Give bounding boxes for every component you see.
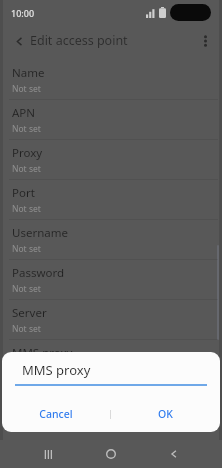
staticText: Cancel: [39, 407, 73, 421]
button[interactable]: APN: [0, 100, 222, 139]
staticText: Username: [12, 225, 68, 241]
staticText: Not set: [12, 83, 41, 95]
staticText: Not set: [12, 403, 41, 415]
staticText: Not set: [12, 363, 41, 375]
staticText: Not set: [12, 243, 41, 255]
button[interactable]: Back: [8, 30, 30, 52]
button[interactable]: Proxy: [0, 140, 222, 179]
staticText: Name: [12, 65, 45, 81]
staticText: Port: [12, 185, 35, 201]
button[interactable]: Name: [0, 60, 222, 99]
staticText: Password: [12, 265, 65, 281]
staticText: OK: [158, 407, 173, 421]
button[interactable]: MMS proxy: [0, 340, 222, 379]
staticText: Edit access point: [30, 32, 128, 49]
staticText: MMS proxy: [22, 361, 91, 379]
button[interactable]: Home: [97, 440, 125, 468]
button[interactable]: More options: [194, 30, 216, 52]
button[interactable]: Username: [0, 220, 222, 259]
button[interactable]: Port: [0, 180, 222, 219]
staticText: MMS proxy: [12, 345, 73, 361]
button[interactable]: OK: [111, 401, 220, 427]
staticText: Not set: [12, 123, 41, 135]
staticText: Not set: [12, 323, 41, 335]
button[interactable]: Server: [0, 300, 222, 339]
button[interactable]: MMS port: [0, 380, 222, 419]
button[interactable]: Back: [160, 440, 188, 468]
staticText: Proxy: [12, 145, 43, 161]
button[interactable]: Password: [0, 260, 222, 299]
staticText: APN: [12, 105, 36, 121]
button[interactable]: Recent apps: [34, 440, 62, 468]
staticText: Not set: [12, 203, 41, 215]
staticText: Not set: [12, 283, 41, 295]
staticText: Server: [12, 305, 47, 321]
button[interactable]: Cancel: [2, 401, 110, 427]
staticText: 10:00: [11, 7, 35, 19]
staticText: MMS port: [12, 385, 66, 401]
staticText: Not set: [12, 163, 41, 175]
